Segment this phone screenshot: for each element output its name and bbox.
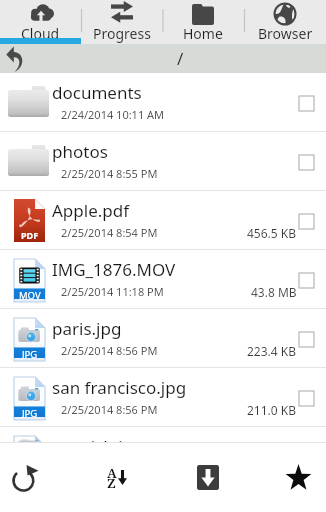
staticText: 2/25/2014 8:56 PM	[61, 402, 158, 417]
button[interactable]: Cloud	[0, 0, 81, 44]
staticText: Apple.pdf	[52, 199, 130, 222]
button[interactable]: Back	[0, 45, 32, 73]
button[interactable]: Select IMG_1876.MOV	[299, 273, 314, 288]
staticText: paris.jpg	[52, 317, 122, 340]
staticText: Cloud	[21, 24, 60, 43]
staticText: photos	[52, 140, 108, 163]
button[interactable]: Sort	[95, 443, 139, 512]
staticText: 211.0 KB	[247, 402, 297, 418]
staticText: 2/24/2014 10:11 AM	[61, 107, 165, 122]
staticText: JPG	[22, 407, 38, 420]
button[interactable]: Refresh	[4, 443, 48, 512]
button[interactable]: Select Apple.pdf	[299, 214, 314, 229]
button[interactable]: Home	[162, 0, 244, 44]
staticText: /	[177, 47, 184, 70]
staticText: A	[107, 464, 117, 482]
button[interactable]: PDF	[0, 191, 326, 250]
button[interactable]: JPG	[0, 309, 326, 368]
staticText: 2/25/2014 8:56 PM	[61, 343, 158, 358]
button[interactable]: Select photos	[299, 155, 314, 170]
staticText: JPG	[22, 466, 38, 479]
staticText: spanish.jpg	[52, 435, 144, 451]
staticText: 190.2 KB	[247, 461, 297, 477]
button[interactable]: JPG	[0, 368, 326, 427]
staticText: 456.5 KB	[247, 225, 297, 241]
staticText: 2/25/2014 8:55 PM	[61, 166, 158, 181]
staticText: 2/25/2014 11:18 PM	[61, 284, 164, 299]
button[interactable]: photos	[0, 132, 326, 191]
staticText: san francisco.jpg	[52, 376, 187, 399]
button[interactable]: Select san francisco.jpg	[299, 391, 314, 406]
button[interactable]: documents	[0, 73, 326, 132]
staticText: IMG_1876.MOV	[52, 258, 176, 281]
staticText: MOV	[19, 289, 41, 302]
button[interactable]: Browser	[244, 0, 326, 44]
staticText: Home	[183, 24, 223, 43]
button[interactable]: Select documents	[299, 96, 314, 111]
button[interactable]: Select paris.jpg	[299, 332, 314, 347]
button[interactable]: Download	[186, 443, 230, 512]
staticText: Z	[107, 474, 116, 492]
staticText: JPG	[22, 348, 38, 361]
staticText: 2/25/2014 8:57 PM	[61, 461, 158, 476]
button[interactable]: Favorites	[276, 443, 320, 512]
button[interactable]: Progress	[81, 0, 162, 44]
staticText: 223.4 KB	[247, 343, 297, 359]
staticText: Browser	[258, 24, 313, 43]
staticText: Progress	[93, 24, 151, 43]
button[interactable]: MOV	[0, 250, 326, 309]
staticText: 2/25/2014 8:54 PM	[61, 225, 158, 240]
staticText: PDF	[21, 229, 39, 241]
staticText: documents	[52, 81, 142, 104]
button[interactable]: JPG	[0, 427, 326, 443]
staticText: 43.8 MB	[251, 284, 297, 300]
